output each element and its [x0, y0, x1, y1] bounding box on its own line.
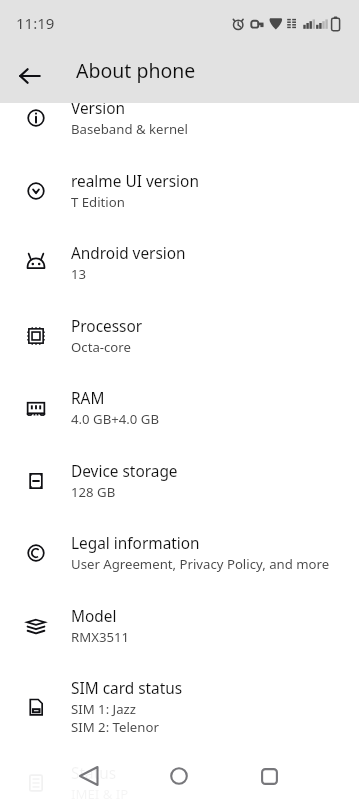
button[interactable]: Processor — [0, 299, 359, 372]
button[interactable]: Back — [65, 752, 113, 800]
button[interactable]: Model — [0, 589, 359, 662]
staticText: User Agreement, Privacy Policy, and more — [71, 555, 330, 573]
staticText: SIM card status — [71, 678, 183, 699]
staticText: About phone — [76, 57, 196, 84]
button[interactable]: Home — [155, 752, 203, 800]
staticText: Android version — [71, 243, 186, 264]
staticText: SIM 1: Jazz — [71, 700, 137, 718]
button[interactable]: Version — [0, 81, 359, 154]
staticText: SIM 2: Telenor — [71, 718, 159, 736]
staticText: RMX3511 — [71, 628, 130, 646]
button[interactable]: Device storage — [0, 444, 359, 517]
staticText: Baseband & kernel — [71, 120, 188, 138]
staticText: Device storage — [71, 461, 178, 482]
button[interactable]: SIM card status — [0, 661, 359, 753]
button[interactable]: RAM — [0, 371, 359, 444]
button[interactable]: Status — [0, 746, 359, 800]
staticText: IMEI & IP — [71, 785, 129, 800]
button[interactable]: realme UI version — [0, 154, 359, 227]
staticText: 13 — [71, 265, 87, 283]
button[interactable]: Android version — [0, 226, 359, 299]
staticText: T Edition — [71, 193, 125, 211]
button[interactable]: Recents — [245, 752, 293, 800]
staticText: Model — [71, 606, 117, 627]
staticText: 4.0 GB+4.0 GB — [71, 410, 159, 428]
staticText: Status — [71, 763, 117, 784]
staticText: RAM — [71, 388, 105, 409]
staticText: Processor — [71, 316, 143, 337]
button[interactable]: Legal information — [0, 516, 359, 589]
staticText: 11:19 — [16, 13, 55, 33]
staticText: Octa-core — [71, 338, 131, 356]
staticText: 128 GB — [71, 483, 116, 501]
staticText: Legal information — [71, 533, 200, 554]
staticText: realme UI version — [71, 171, 199, 192]
staticText: Version — [71, 98, 126, 119]
button[interactable]: Back — [7, 53, 52, 98]
